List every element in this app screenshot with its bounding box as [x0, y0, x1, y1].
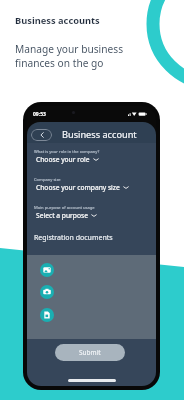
- button[interactable]: Back: [31, 129, 52, 141]
- button[interactable]: Company size: [27, 177, 156, 204]
- button[interactable]: Submit: [55, 344, 125, 361]
- button[interactable]: Upload from gallery: [40, 263, 54, 277]
- staticText: 09:53: [33, 111, 46, 118]
- button[interactable]: Main purpose of account usage: [27, 205, 156, 232]
- button[interactable]: Upload a file: [40, 308, 54, 322]
- staticText: Submit: [79, 348, 101, 357]
- staticText: Manage your business finances on the go: [15, 42, 124, 70]
- button[interactable]: What is your role in the company?: [27, 149, 156, 176]
- staticText: Main purpose of account usage: [34, 205, 95, 211]
- staticText: Select a purpose: [36, 211, 88, 220]
- staticText: Business account: [62, 128, 137, 141]
- staticText: Company size: [34, 177, 61, 183]
- button[interactable]: Take a photo: [40, 285, 54, 299]
- staticText: Registration documents: [34, 233, 113, 243]
- staticText: Choose your company size: [36, 183, 120, 192]
- staticText: Choose your role: [36, 155, 90, 164]
- staticText: Business accounts: [15, 14, 100, 27]
- staticText: What is your role in the company?: [34, 149, 100, 155]
